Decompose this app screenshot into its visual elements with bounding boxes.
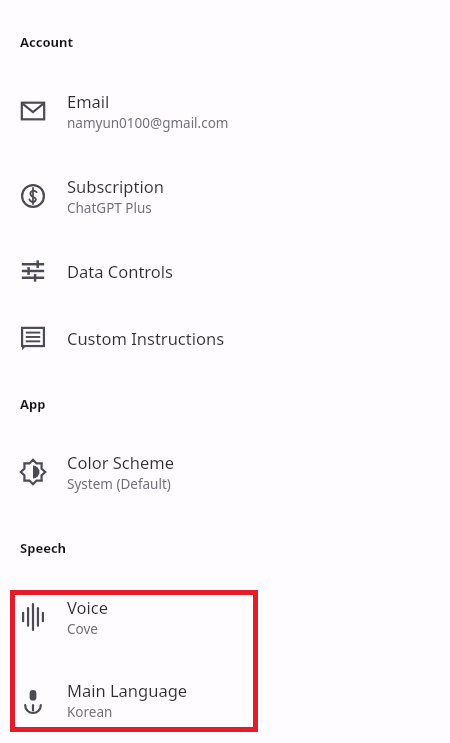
button[interactable]: Color Scheme [0,447,450,497]
staticText: System (Default) [67,475,171,493]
staticText: Account [20,33,74,51]
button[interactable]: Email [0,86,450,136]
button[interactable]: Subscription [0,171,450,221]
staticText: Custom Instructions [67,327,225,349]
staticText: Color Scheme [67,451,174,473]
button[interactable]: Main Language [0,675,450,725]
button[interactable]: Custom Instructions [0,321,450,355]
staticText: Speech [20,539,67,557]
staticText: Cove [67,620,98,638]
staticText: Data Controls [67,260,173,282]
staticText: Email [67,90,110,112]
staticText: Korean [67,703,113,721]
staticText: Main Language [67,679,188,701]
staticText: ChatGPT Plus [67,199,152,217]
staticText: Subscription [67,175,164,197]
staticText: App [20,395,46,413]
staticText: namyun0100@gmail.com [67,114,229,132]
button[interactable]: Voice [0,592,450,642]
button[interactable]: Data Controls [0,254,450,288]
staticText: Voice [67,596,109,618]
